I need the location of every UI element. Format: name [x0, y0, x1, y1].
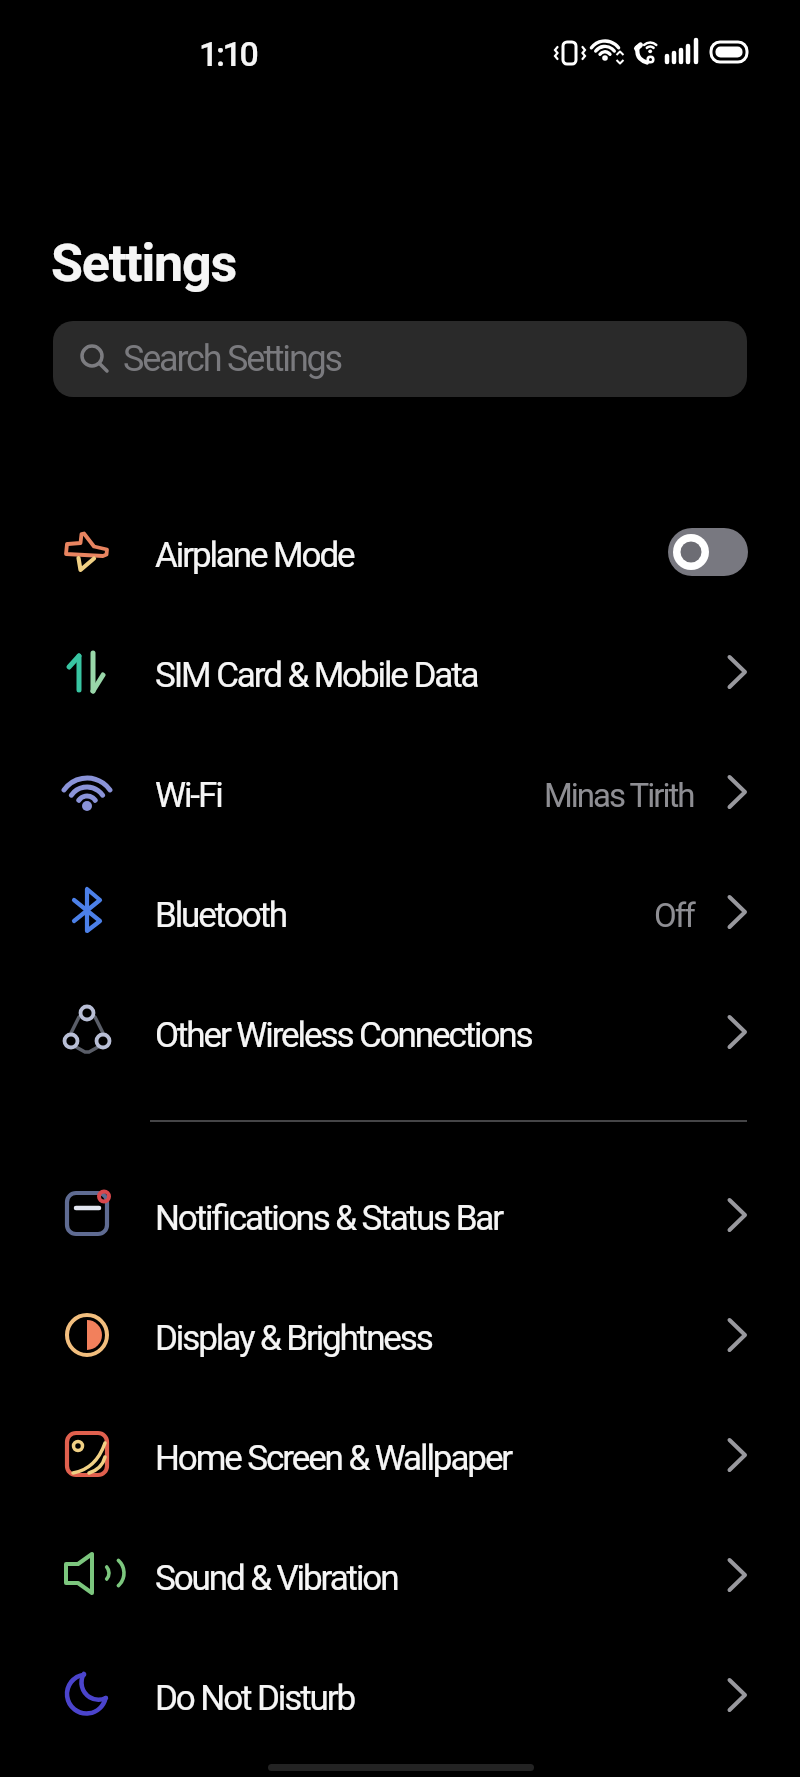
staticText: Do Not Disturb [155, 1678, 355, 1719]
button[interactable]: Wi-Fi [0, 732, 800, 852]
staticText: SIM Card & Mobile Data [155, 655, 478, 696]
button[interactable]: Search Settings [53, 321, 747, 397]
button[interactable]: SIM Card & Mobile Data [0, 612, 800, 732]
button[interactable]: Notifications & Status Bar [0, 1155, 800, 1275]
staticText: Minas Tirith [544, 776, 694, 815]
button[interactable]: Home Screen & Wallpaper [0, 1395, 800, 1515]
staticText: Airplane Mode [155, 535, 354, 576]
button[interactable]: Other Wireless Connections [0, 972, 800, 1092]
staticText: 1:10 [199, 34, 257, 74]
staticText: Other Wireless Connections [155, 1015, 532, 1056]
staticText: Settings [51, 233, 236, 294]
staticText: Display & Brightness [155, 1318, 432, 1359]
button[interactable]: Do Not Disturb [0, 1635, 800, 1755]
button[interactable]: Display & Brightness [0, 1275, 800, 1395]
staticText: Sound & Vibration [155, 1558, 398, 1599]
staticText: Wi-Fi [155, 775, 222, 816]
staticText: Search Settings [123, 338, 341, 380]
button[interactable] [668, 528, 748, 576]
staticText: Home Screen & Wallpaper [155, 1438, 512, 1479]
button[interactable]: Bluetooth [0, 852, 800, 972]
staticText: Bluetooth [155, 895, 287, 936]
button[interactable]: Airplane Mode [0, 492, 800, 612]
button[interactable]: Sound & Vibration [0, 1515, 800, 1635]
staticText: Notifications & Status Bar [155, 1198, 503, 1239]
staticText: Off [654, 896, 694, 935]
